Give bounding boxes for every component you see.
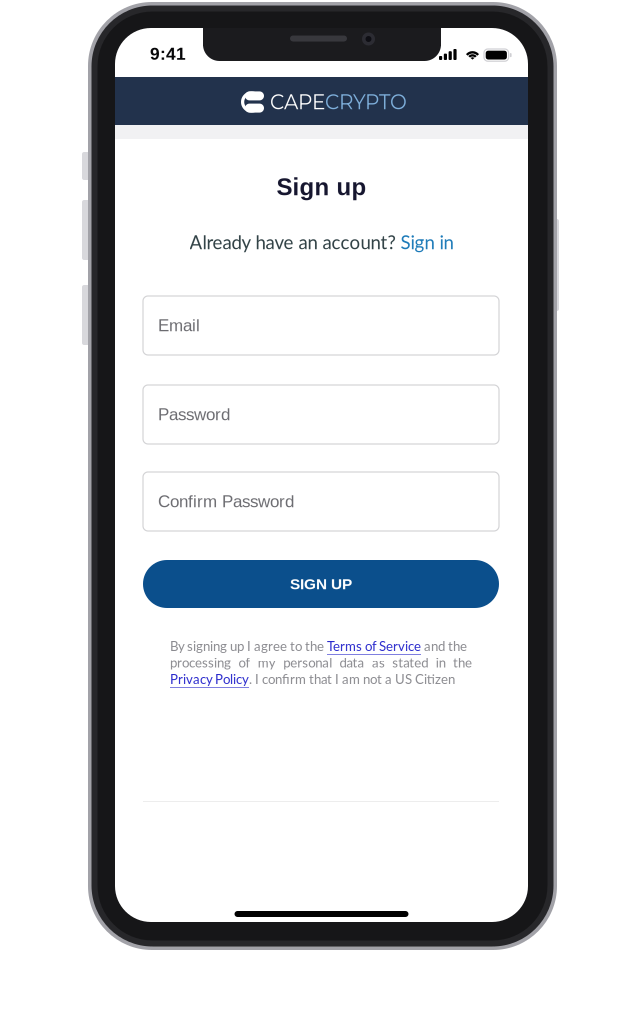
staticText: personal	[283, 655, 332, 670]
staticText: . I confirm that I am not a US Citizen	[249, 671, 455, 687]
button[interactable]: Confirm Password	[143, 472, 499, 531]
staticText: of	[238, 655, 250, 670]
staticText: Terms of Service	[327, 638, 421, 654]
staticText: my	[258, 655, 276, 670]
staticText: CAPE	[270, 90, 325, 114]
button[interactable]: Terms of Service	[327, 638, 421, 654]
staticText: the	[453, 655, 472, 670]
staticText: in	[436, 655, 446, 670]
staticText: Password	[158, 405, 230, 424]
button[interactable]: SIGN UP	[143, 560, 499, 608]
staticText: Email	[158, 316, 200, 335]
staticText: stated	[392, 655, 428, 670]
staticText: SIGN UP	[290, 575, 352, 592]
button[interactable]: Sign in	[395, 231, 453, 253]
staticText: By signing up I agree to the	[170, 638, 327, 654]
staticText: and the	[421, 638, 467, 654]
staticText: as	[372, 655, 385, 670]
staticText: CRYPTO	[325, 90, 407, 114]
staticText: Confirm Password	[158, 492, 294, 511]
button[interactable]: Email	[143, 296, 499, 355]
staticText: Sign in	[400, 231, 453, 253]
button[interactable]: Password	[143, 385, 499, 444]
staticText: Already have an account?	[189, 231, 395, 253]
staticText: 9:41	[150, 44, 186, 63]
staticText: Sign up	[276, 174, 366, 200]
button[interactable]: Privacy Policy	[170, 671, 249, 687]
staticText: data	[339, 655, 364, 670]
staticText: processing	[170, 655, 231, 670]
staticText: Privacy Policy	[170, 671, 249, 687]
